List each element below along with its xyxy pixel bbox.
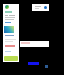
button[interactable] [4, 56, 18, 61]
button[interactable] [3, 4, 19, 62]
button[interactable] [32, 4, 49, 11]
